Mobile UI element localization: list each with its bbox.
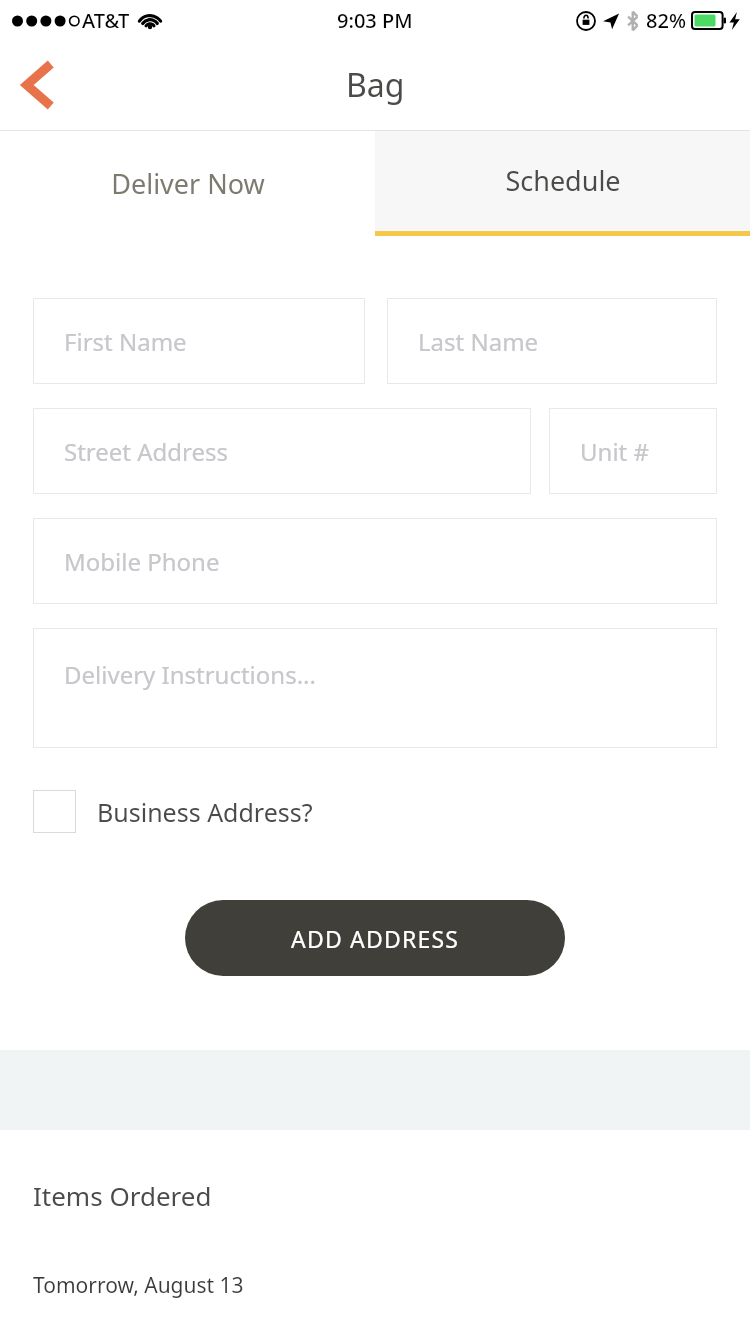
button[interactable]: Last Name (387, 298, 717, 384)
staticText: Schedule (505, 162, 621, 199)
button[interactable]: Schedule (375, 131, 750, 236)
button[interactable]: Unit # (549, 408, 717, 494)
staticText: Items Ordered (33, 1178, 212, 1213)
staticText: Tomorrow, August 13 (33, 1271, 244, 1300)
staticText: Unit # (580, 435, 649, 468)
staticText: First Name (64, 325, 187, 358)
staticText: Delivery Instructions... (64, 658, 316, 691)
staticText: 82% (646, 7, 686, 34)
button[interactable]: ADD ADDRESS (185, 900, 565, 976)
button[interactable]: Business Address? (33, 790, 313, 833)
staticText: 9:03 PM (337, 7, 413, 34)
staticText: AT&T (82, 7, 130, 34)
staticText: Deliver Now (111, 165, 265, 202)
staticText: Mobile Phone (64, 545, 220, 578)
button[interactable]: Delivery Instructions... (33, 628, 717, 748)
button[interactable]: Deliver Now (0, 131, 375, 236)
button[interactable]: Street Address (33, 408, 531, 494)
staticText: Business Address? (97, 795, 313, 829)
staticText: ADD ADDRESS (291, 923, 460, 954)
staticText: Bag (346, 63, 405, 107)
button[interactable]: Mobile Phone (33, 518, 717, 604)
button[interactable]: First Name (33, 298, 365, 384)
button[interactable]: Back (0, 46, 78, 124)
staticText: Last Name (418, 325, 539, 358)
staticText: Street Address (64, 435, 229, 468)
